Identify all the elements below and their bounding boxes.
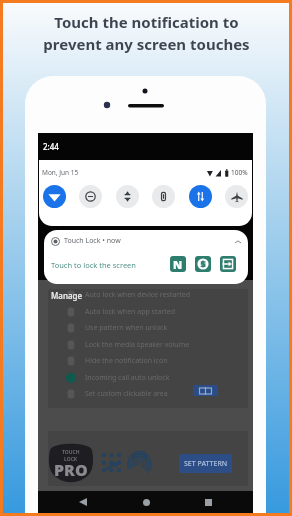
button[interactable]: Set clickable area xyxy=(193,385,218,396)
button[interactable]: SET PATTERN xyxy=(179,454,232,473)
button[interactable]: Back xyxy=(74,493,92,511)
staticText: Hide the notification icon xyxy=(85,356,168,366)
staticText: 100% xyxy=(231,168,248,177)
staticText: Manage xyxy=(51,290,83,301)
staticText: Incoming call auto unlock xyxy=(85,373,170,383)
button[interactable]: Home xyxy=(137,493,155,511)
button[interactable]: Do not disturb xyxy=(79,185,102,208)
button[interactable]: Incoming call auto unlock xyxy=(48,369,248,386)
button[interactable]: Hide the notification icon xyxy=(48,352,248,369)
button[interactable]: Airplane mode xyxy=(225,185,248,208)
staticText: TOUCH xyxy=(62,449,80,456)
staticText: Touch the notification to xyxy=(54,12,239,32)
staticText: prevent any screen touches xyxy=(43,34,250,54)
staticText: 2:44 xyxy=(43,141,59,152)
staticText: Touch Lock • now xyxy=(64,236,121,246)
button[interactable]: Flashlight xyxy=(152,185,175,208)
button[interactable]: Lock the media speaker volume xyxy=(48,336,248,353)
staticText: Auto lock when app started xyxy=(85,307,176,317)
staticText: N xyxy=(173,257,183,272)
staticText: Auto lock when device restarted xyxy=(85,290,191,300)
button[interactable]: Use pattern when unlock xyxy=(48,319,248,336)
button[interactable]: Auto lock when app started xyxy=(48,303,248,320)
button[interactable]: Auto rotate xyxy=(116,185,139,208)
staticText: Lock the media speaker volume xyxy=(85,340,190,350)
staticText: PRO xyxy=(54,459,88,481)
staticText: Use pattern when unlock xyxy=(85,323,168,333)
staticText: SET PATTERN xyxy=(184,459,228,469)
button[interactable]: Touch Lock • now xyxy=(44,230,248,284)
button[interactable]: Notes xyxy=(170,256,186,272)
staticText: Touch to lock the screen xyxy=(51,260,136,270)
button[interactable]: Recent apps xyxy=(199,493,217,511)
button[interactable]: Set custom clickable area xyxy=(48,385,248,402)
button[interactable]: Exit xyxy=(220,256,236,272)
staticText: LOCK xyxy=(64,456,78,463)
button[interactable]: Wi-Fi xyxy=(43,185,66,208)
staticText: Set custom clickable area xyxy=(85,389,168,399)
button[interactable]: Mobile data xyxy=(189,185,212,208)
button[interactable]: Payments xyxy=(195,256,211,272)
staticText: Mon, Jun 15 xyxy=(42,168,79,177)
button[interactable]: Auto lock when device restarted xyxy=(48,289,248,303)
